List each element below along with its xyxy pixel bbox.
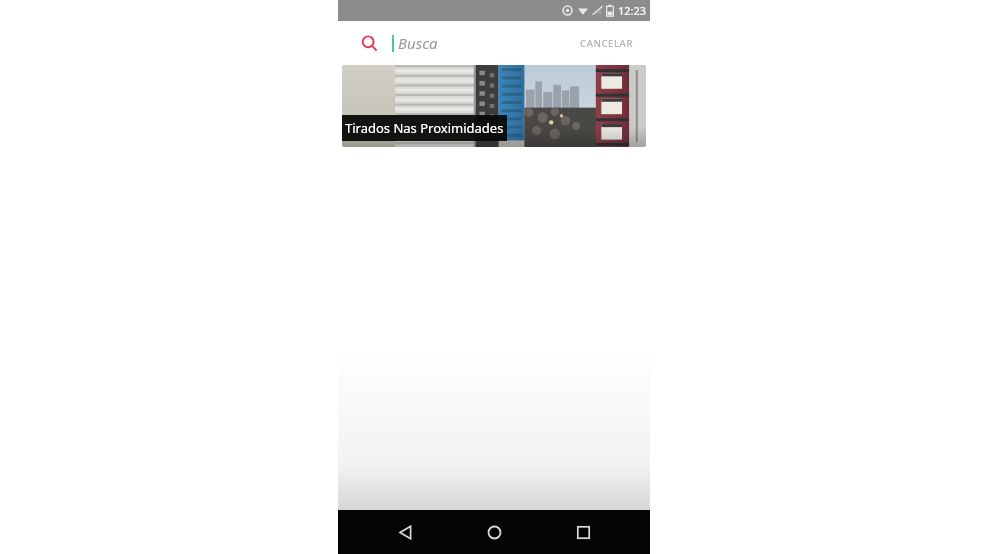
button[interactable]: Home xyxy=(472,510,516,554)
button[interactable]: Tirados Nas Proximidades xyxy=(342,65,646,147)
staticText: 12:23 xyxy=(618,3,647,18)
button[interactable]: Back xyxy=(383,510,427,554)
button[interactable]: Search xyxy=(356,30,382,56)
staticText: Busca xyxy=(398,33,438,53)
button[interactable]: CANCELAR xyxy=(576,21,638,65)
staticText: CANCELAR xyxy=(580,37,634,50)
button[interactable]: Recent apps xyxy=(561,510,605,554)
button[interactable]: Busca xyxy=(392,21,576,65)
staticText: Tirados Nas Proximidades xyxy=(345,119,504,137)
